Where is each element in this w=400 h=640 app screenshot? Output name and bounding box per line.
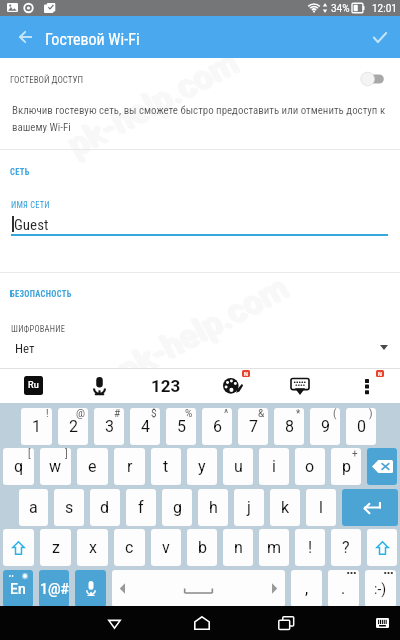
- staticText: 1@#: [40, 581, 69, 597]
- staticText: g: [173, 498, 182, 517]
- button[interactable]: 6: [202, 408, 232, 445]
- button[interactable]: Space: [112, 570, 285, 607]
- button[interactable]: Language: [0, 368, 66, 403]
- button[interactable]: 5: [166, 408, 196, 445]
- staticText: 7: [249, 417, 258, 436]
- button[interactable]: y: [187, 448, 217, 485]
- button[interactable]: Themes: [199, 368, 266, 403]
- staticText: 9: [321, 417, 330, 436]
- button[interactable]: 0: [346, 408, 376, 445]
- button[interactable]: Voice input: [75, 570, 106, 607]
- button[interactable]: !: [295, 529, 325, 566]
- button[interactable]: b: [187, 529, 217, 566]
- staticText: Включив гостевую сеть, вы сможете быстро…: [12, 104, 390, 134]
- button[interactable]: z: [40, 529, 71, 566]
- button[interactable]: 4: [130, 408, 160, 445]
- button[interactable]: f: [126, 489, 156, 526]
- staticText: ИМЯ СЕТИ: [11, 200, 50, 210]
- button[interactable]: a: [19, 489, 48, 526]
- button[interactable]: 1: [21, 408, 52, 445]
- staticText: o: [305, 457, 315, 476]
- button[interactable]: i: [259, 448, 289, 485]
- staticText: $: [151, 408, 157, 420]
- staticText: a: [29, 498, 38, 517]
- staticText: k: [281, 498, 290, 517]
- button[interactable]: t: [151, 448, 181, 485]
- button[interactable]: Back: [94, 606, 135, 640]
- button[interactable]: g: [162, 489, 192, 526]
- button[interactable]: Shift: [3, 529, 34, 566]
- staticText: ГОСТЕВОЙ ДОСТУП: [10, 75, 84, 86]
- staticText: #: [114, 408, 121, 420]
- button[interactable]: Backspace: [367, 448, 397, 485]
- staticText: !: [308, 538, 313, 557]
- button[interactable]: Guest access switch: [358, 68, 388, 90]
- button[interactable]: x: [77, 529, 108, 566]
- staticText: БЕЗОПАСНОСТЬ: [10, 289, 72, 299]
- button[interactable]: :-): [365, 570, 396, 607]
- button[interactable]: o: [295, 448, 325, 485]
- staticText: СЕТЬ: [10, 167, 30, 177]
- button[interactable]: 2: [58, 408, 88, 445]
- staticText: d: [100, 498, 110, 517]
- staticText: m: [267, 538, 282, 557]
- staticText: Ru: [28, 380, 39, 391]
- button[interactable]: Save: [360, 16, 400, 58]
- button[interactable]: 9: [310, 408, 340, 445]
- staticText: j: [247, 498, 251, 517]
- button[interactable]: j: [234, 489, 264, 526]
- staticText: 3: [105, 417, 114, 436]
- staticText: .: [341, 579, 346, 598]
- staticText: !: [46, 408, 49, 420]
- button[interactable]: p: [331, 448, 361, 485]
- button[interactable]: n: [223, 529, 253, 566]
- staticText: x: [89, 538, 97, 557]
- staticText: 0: [357, 417, 366, 436]
- button[interactable]: s: [54, 489, 84, 526]
- staticText: c: [125, 538, 134, 557]
- button[interactable]: Enter: [342, 489, 398, 526]
- button[interactable]: ?: [331, 529, 361, 566]
- button[interactable]: u: [223, 448, 253, 485]
- button[interactable]: Navigate up: [6, 16, 44, 58]
- button[interactable]: h: [198, 489, 228, 526]
- button[interactable]: q: [3, 448, 34, 485]
- button[interactable]: r: [114, 448, 145, 485]
- button[interactable]: c: [114, 529, 145, 566]
- staticText: i: [272, 457, 276, 476]
- button[interactable]: m: [259, 529, 289, 566]
- staticText: w: [49, 457, 62, 476]
- button[interactable]: ШИФРОВАНИЕ: [0, 318, 400, 366]
- staticText: n: [234, 538, 243, 557]
- staticText: [: [28, 448, 31, 460]
- button[interactable]: e: [77, 448, 108, 485]
- staticText: f: [138, 498, 144, 517]
- button[interactable]: 8: [274, 408, 304, 445]
- button[interactable]: Shift: [367, 529, 397, 566]
- staticText: 123: [151, 376, 181, 396]
- staticText: 34%: [331, 3, 350, 15]
- button[interactable]: .: [328, 570, 359, 607]
- button[interactable]: ГОСТЕВОЙ ДОСТУП: [0, 58, 400, 92]
- button[interactable]: 1@#: [39, 570, 69, 607]
- button[interactable]: Numbers: [132, 368, 199, 403]
- button[interactable]: ,: [291, 570, 322, 607]
- staticText: ): [369, 408, 373, 420]
- button[interactable]: Switch keyboard: [362, 606, 400, 640]
- button[interactable]: l: [306, 489, 336, 526]
- button[interactable]: d: [90, 489, 120, 526]
- button[interactable]: Voice input: [66, 368, 132, 403]
- staticText: *: [296, 408, 301, 420]
- button[interactable]: 7: [238, 408, 268, 445]
- button[interactable]: v: [151, 529, 181, 566]
- staticText: ?: [342, 538, 350, 557]
- button[interactable]: 3: [94, 408, 124, 445]
- button[interactable]: k: [270, 489, 300, 526]
- button[interactable]: Home: [181, 606, 222, 640]
- staticText: 5: [177, 417, 186, 436]
- button[interactable]: Recent apps: [265, 606, 306, 640]
- button[interactable]: w: [40, 448, 71, 485]
- button[interactable]: Language: [3, 570, 33, 607]
- button[interactable]: More options: [333, 368, 400, 403]
- button[interactable]: Hide keyboard: [266, 368, 333, 403]
